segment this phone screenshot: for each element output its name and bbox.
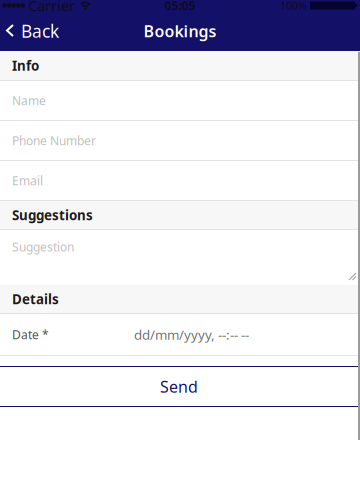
- staticText: dd/mm/yyyy, --:-- --: [134, 326, 249, 343]
- staticText: Info: [12, 57, 39, 74]
- button[interactable]: Suggestion: [0, 230, 360, 285]
- staticText: Bookings: [143, 20, 216, 42]
- button[interactable]: Phone Number: [0, 121, 360, 161]
- staticText: Phone Number: [12, 132, 96, 148]
- staticText: Carrier: [28, 0, 75, 15]
- staticText: 100%: [280, 0, 307, 13]
- button[interactable]: Back: [0, 11, 69, 51]
- staticText: Name: [12, 92, 46, 108]
- button[interactable]: Date *: [0, 314, 360, 356]
- button[interactable]: Email: [0, 161, 360, 201]
- button[interactable]: Name: [0, 81, 360, 121]
- button[interactable]: Send: [0, 366, 360, 407]
- staticText: Details: [12, 290, 59, 308]
- staticText: Email: [12, 172, 43, 188]
- staticText: Date *: [12, 326, 49, 342]
- staticText: 05:05: [164, 0, 195, 13]
- staticText: Suggestion: [12, 239, 74, 255]
- staticText: Suggestions: [12, 206, 93, 224]
- staticText: Back: [21, 19, 59, 42]
- staticText: Send: [160, 376, 198, 397]
